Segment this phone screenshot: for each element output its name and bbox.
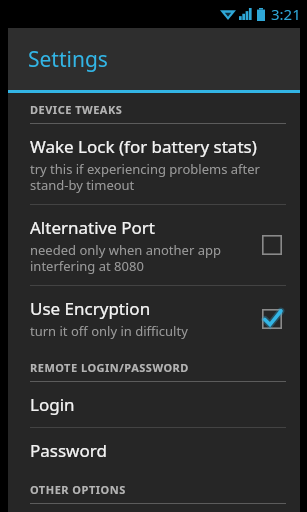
- staticText: DEVICE TWEAKS: [30, 102, 123, 117]
- staticText: Alternative Port: [30, 216, 155, 239]
- button[interactable]: Checked: [258, 305, 286, 333]
- staticText: OTHER OPTIONS: [30, 482, 126, 497]
- staticText: try this if experiencing problems after …: [30, 160, 260, 193]
- button[interactable]: Wake Lock (for battery stats): [8, 124, 300, 204]
- button[interactable]: Use Encryption: [8, 286, 300, 351]
- staticText: Settings: [28, 45, 108, 74]
- staticText: turn it off only in difficulty: [30, 322, 188, 340]
- button[interactable]: Unchecked: [258, 231, 286, 259]
- staticText: Login: [30, 393, 75, 416]
- staticText: Use Encryption: [30, 297, 151, 320]
- staticText: REMOTE LOGIN/PASSWORD: [30, 360, 189, 375]
- staticText: Password: [30, 439, 107, 462]
- staticText: needed only when another app interfering…: [30, 241, 221, 274]
- button[interactable]: Settings: [8, 28, 300, 90]
- staticText: 3:21: [271, 4, 301, 24]
- button[interactable]: Alternative Port: [8, 205, 300, 285]
- button[interactable]: Password: [8, 428, 300, 473]
- staticText: Wake Lock (for battery stats): [30, 135, 257, 158]
- button[interactable]: Login: [8, 382, 300, 427]
